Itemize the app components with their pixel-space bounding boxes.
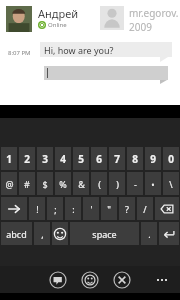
button[interactable]: : (65, 197, 81, 220)
button[interactable]: Hi, how are you? (40, 42, 172, 57)
button[interactable]: ? (119, 197, 135, 220)
staticText: 4 (60, 152, 66, 166)
button[interactable]: @ (1, 172, 17, 195)
button[interactable]: ; (47, 197, 63, 220)
staticText: " (107, 203, 111, 215)
staticText: abcd (6, 228, 27, 240)
button[interactable]: Contact avatar (6, 6, 32, 32)
staticText: 8 (132, 152, 138, 166)
button[interactable]: 7 (109, 147, 125, 170)
staticText: Online (48, 21, 67, 29)
staticText: 2 (24, 152, 30, 166)
button[interactable]: \ (163, 172, 179, 195)
button[interactable]: / (137, 197, 153, 220)
button[interactable]: • (145, 172, 161, 195)
staticText: @ (5, 178, 14, 190)
staticText: 8:07 PM (8, 49, 31, 57)
button[interactable]: mr.egorov.2009 avatar (100, 6, 124, 30)
button[interactable]: ( (91, 172, 107, 195)
button[interactable]: Emoticons (79, 269, 101, 291)
button[interactable]: More options (150, 270, 174, 290)
button[interactable]: 5 (73, 147, 89, 170)
staticText: # (24, 178, 30, 190)
staticText: 3 (42, 152, 48, 166)
button[interactable]: Message input (44, 66, 168, 80)
button[interactable]: # (19, 172, 35, 195)
staticText: & (78, 178, 85, 190)
staticText: ! (36, 203, 39, 215)
button[interactable]: 0 (163, 147, 179, 170)
button[interactable]: More symbols (1, 197, 27, 220)
staticText: % (59, 178, 67, 190)
button[interactable]: Messages (47, 269, 69, 291)
staticText: 5 (78, 152, 84, 166)
button[interactable]: - (127, 172, 143, 195)
button[interactable]: 9 (145, 147, 161, 170)
staticText: 6 (96, 152, 102, 166)
staticText: ' (90, 203, 93, 215)
staticText: $ (42, 178, 48, 190)
button[interactable]: 6 (91, 147, 107, 170)
button[interactable]: Enter (159, 222, 179, 245)
button[interactable]: Emoji (52, 222, 68, 245)
staticText: 0 (168, 152, 174, 166)
staticText: - (134, 178, 137, 190)
staticText: 7 (114, 152, 120, 166)
staticText: • (151, 178, 155, 190)
button[interactable]: 8 (127, 147, 143, 170)
staticText: mr.egorov.2009 (129, 6, 180, 34)
staticText: 9 (150, 152, 156, 166)
button[interactable]: space (70, 222, 139, 245)
button[interactable]: 1 (1, 147, 17, 170)
button[interactable]: ' (83, 197, 99, 220)
button[interactable]: abcd (1, 222, 32, 245)
staticText: space (92, 228, 117, 240)
button[interactable]: $ (37, 172, 53, 195)
button[interactable]: % (55, 172, 71, 195)
button[interactable]: 3 (37, 147, 53, 170)
staticText: ; (54, 203, 57, 215)
button[interactable]: . (141, 222, 157, 245)
staticText: Hi, how are you? (44, 44, 114, 56)
button[interactable]: " (101, 197, 117, 220)
staticText: , (41, 228, 44, 240)
staticText: ) (116, 178, 119, 190)
button[interactable]: 4 (55, 147, 71, 170)
staticText: ? (125, 203, 129, 215)
button[interactable]: ! (29, 197, 45, 220)
staticText: \ (169, 178, 173, 190)
button[interactable]: Close (111, 269, 133, 291)
staticText: / (143, 203, 147, 215)
staticText: 1 (6, 152, 12, 166)
button[interactable]: ) (109, 172, 125, 195)
staticText: . (148, 228, 151, 240)
button[interactable]: 2 (19, 147, 35, 170)
button[interactable]: & (73, 172, 89, 195)
staticText: Андрей (38, 6, 79, 21)
button[interactable]: , (34, 222, 50, 245)
button[interactable]: Backspace (155, 197, 179, 220)
staticText: ( (98, 178, 101, 190)
staticText: : (72, 203, 75, 215)
